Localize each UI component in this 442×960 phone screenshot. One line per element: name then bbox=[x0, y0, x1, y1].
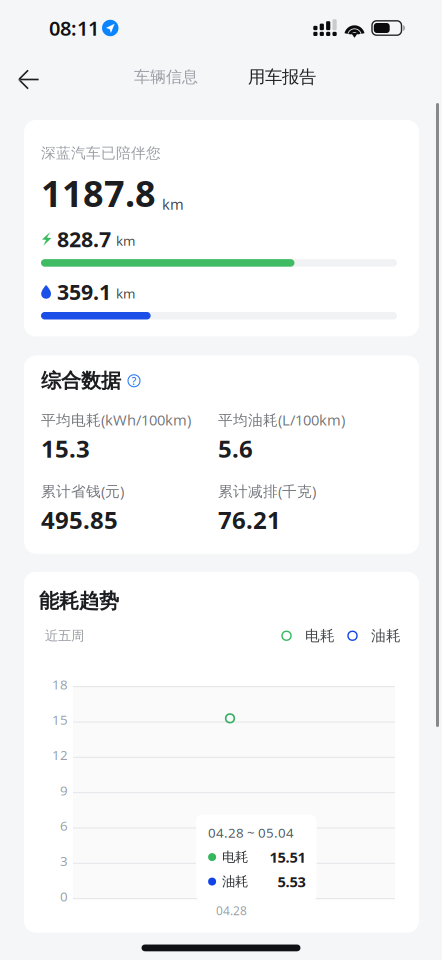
staticText: 495.85 bbox=[41, 504, 118, 536]
staticText: 76.21 bbox=[218, 504, 281, 536]
staticText: km bbox=[162, 194, 184, 214]
staticText: 深蓝汽车已陪伴您 bbox=[41, 144, 161, 162]
staticText: 0 bbox=[60, 887, 68, 905]
staticText: 近五周 bbox=[45, 628, 84, 644]
staticText: 能耗趋势 bbox=[39, 589, 119, 613]
staticText: 油耗 bbox=[222, 873, 248, 890]
staticText: 12 bbox=[52, 746, 68, 764]
staticText: 6 bbox=[60, 817, 68, 834]
staticText: 08:11 bbox=[49, 15, 99, 41]
staticText: 5.6 bbox=[218, 432, 253, 464]
staticText: 3 bbox=[60, 852, 68, 870]
staticText: 累计省钱(元) bbox=[41, 481, 124, 501]
staticText: 04.28 bbox=[216, 903, 247, 919]
staticText: 359.1 bbox=[57, 278, 111, 306]
staticText: 电耗 bbox=[305, 627, 335, 645]
staticText: km bbox=[116, 284, 135, 302]
staticText: 5.53 bbox=[278, 872, 306, 891]
button[interactable]: 车辆信息 bbox=[134, 58, 198, 96]
staticText: 油耗 bbox=[371, 627, 401, 645]
staticText: 18 bbox=[52, 675, 68, 693]
staticText: 平均油耗(L/100km) bbox=[218, 410, 345, 429]
staticText: 1187.8 bbox=[41, 169, 156, 217]
staticText: 9 bbox=[60, 781, 68, 799]
button[interactable]: 用车报告 bbox=[248, 57, 316, 97]
button[interactable]: 返回 bbox=[0, 59, 55, 95]
staticText: 15.3 bbox=[41, 432, 90, 464]
staticText: 用车报告 bbox=[248, 66, 316, 88]
staticText: ? bbox=[131, 374, 136, 388]
staticText: 累计减排(千克) bbox=[218, 481, 316, 501]
staticText: 15 bbox=[52, 711, 68, 728]
staticText: 平均电耗(kWh/100km) bbox=[41, 410, 191, 429]
staticText: 综合数据 bbox=[41, 368, 121, 393]
staticText: 828.7 bbox=[57, 225, 111, 253]
staticText: 15.51 bbox=[270, 847, 306, 867]
staticText: km bbox=[116, 232, 135, 249]
staticText: 04.28 ~ 05.04 bbox=[208, 824, 294, 841]
staticText: 电耗 bbox=[222, 849, 248, 865]
button[interactable]: 数据说明 bbox=[127, 374, 141, 388]
staticText: 车辆信息 bbox=[134, 67, 198, 87]
